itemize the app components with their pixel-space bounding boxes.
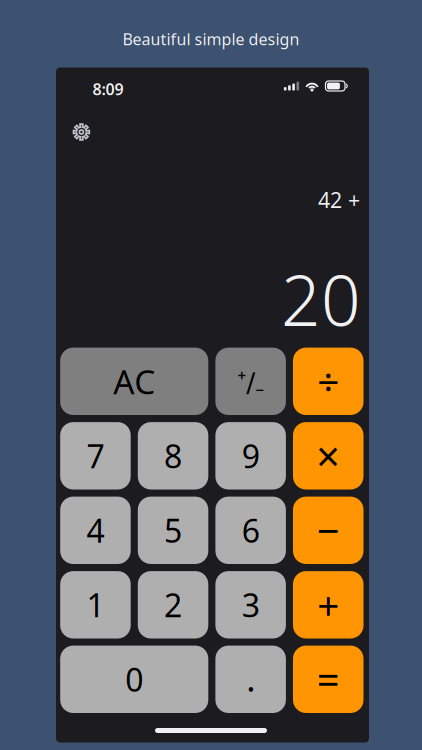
button[interactable]: AC [60,348,208,415]
button[interactable]: 1 [60,571,131,638]
staticText: 8 [164,435,182,477]
button[interactable]: 9 [215,422,286,489]
button[interactable]: × [293,422,363,489]
staticText: = [317,653,340,706]
button[interactable]: 3 [215,571,286,638]
staticText: 6 [242,509,260,552]
button[interactable]: 2 [138,571,208,638]
staticText: 5 [164,509,182,552]
button[interactable]: ⁺∕₋ [215,348,286,415]
button[interactable]: + [293,571,363,638]
button[interactable]: 0 [60,646,208,713]
staticText: 8:09 [92,78,123,100]
staticText: 20 [281,253,361,345]
staticText: Beautiful simple design [122,28,299,50]
button[interactable]: 4 [60,497,131,564]
staticText: AC [113,359,155,403]
staticText: 2 [164,584,182,626]
staticText: × [316,428,340,483]
button[interactable]: 7 [60,422,131,489]
button[interactable]: Settings [72,123,90,141]
staticText: − [317,504,340,557]
button[interactable]: = [293,646,363,713]
staticText: 1 [86,584,104,626]
staticText: . [246,655,255,701]
button[interactable]: 5 [138,497,208,564]
staticText: ÷ [317,356,339,407]
staticText: + [317,579,339,630]
button[interactable]: ÷ [293,348,363,415]
button[interactable]: − [293,497,363,564]
button[interactable]: 6 [215,497,286,564]
button[interactable]: . [215,646,286,713]
staticText: 0 [125,658,143,701]
button[interactable]: 8 [138,422,208,489]
staticText: ⁺∕₋ [237,364,264,399]
staticText: 42 + [318,185,360,214]
staticText: 3 [242,584,260,626]
staticText: 7 [86,435,104,477]
staticText: 9 [242,435,260,477]
staticText: 4 [86,509,104,552]
